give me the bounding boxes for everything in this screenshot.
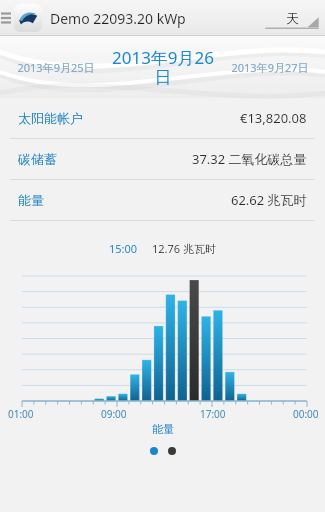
staticText: 2013年9月26日 [106, 46, 220, 88]
staticText: €13,820.08 [240, 109, 307, 127]
staticText: 01:00 [8, 407, 34, 421]
staticText: 碳储蓄 [18, 151, 57, 167]
staticText: 37.32 二氧化碳总量 [192, 150, 307, 168]
staticText: 能量 [18, 192, 44, 208]
staticText: 太阳能帐户 [18, 110, 83, 126]
staticText: 62.62 兆瓦时 [231, 191, 307, 209]
button[interactable]: 天 [263, 3, 321, 33]
staticText: 17:00 [200, 407, 226, 421]
button[interactable]: 能量 [0, 180, 325, 220]
staticText: 15:00 [109, 241, 138, 256]
staticText: 2013年9月27日 [231, 60, 309, 75]
staticText: 09:00 [101, 407, 127, 421]
button[interactable]: Menu [0, 0, 12, 36]
button[interactable]: 2013年9月27日 [220, 36, 319, 98]
staticText: 天 [286, 10, 299, 26]
button[interactable]: 碳储蓄 [0, 139, 325, 179]
button[interactable]: 2013年9月25日 [6, 36, 106, 98]
staticText: 2013年9月25日 [17, 60, 95, 75]
staticText: 能量 [152, 422, 174, 436]
button[interactable]: App logo [14, 4, 42, 32]
button[interactable]: Page 2 [168, 447, 176, 455]
button[interactable]: 太阳能帐户 [0, 98, 325, 138]
staticText: Demo 22093.20 kWp [50, 9, 186, 28]
button[interactable]: Page 1 [150, 447, 158, 455]
staticText: 00:00 [293, 407, 319, 421]
staticText: 12.76 兆瓦时 [152, 241, 216, 256]
button[interactable]: 2013年9月26日 [106, 36, 220, 98]
